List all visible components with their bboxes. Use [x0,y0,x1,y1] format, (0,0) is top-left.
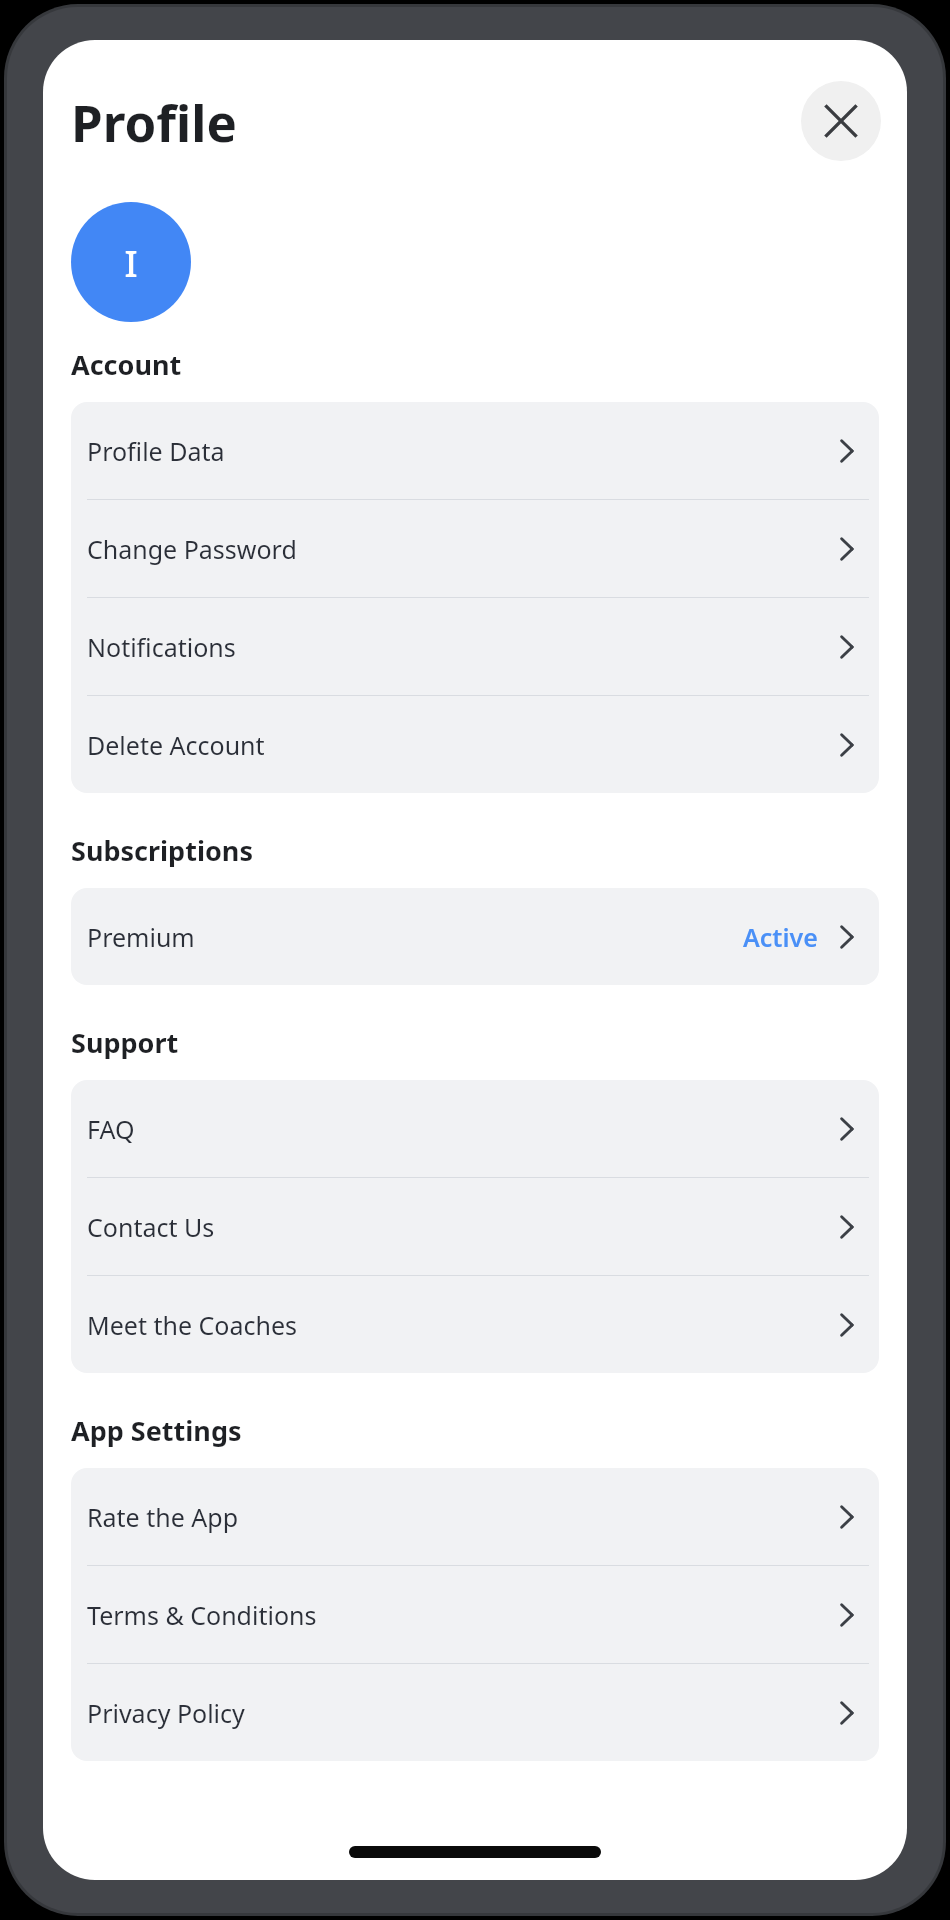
button[interactable]: Close [801,81,881,161]
staticText: App Settings [71,1412,242,1449]
button[interactable]: Profile Data [71,402,879,499]
button[interactable]: I [71,202,191,322]
staticText: Privacy Policy [87,1696,245,1730]
staticText: Active [743,920,818,954]
button[interactable]: FAQ [71,1080,879,1177]
button[interactable]: Meet the Coaches [71,1276,879,1373]
staticText: Premium [87,920,195,954]
staticText: FAQ [87,1112,135,1146]
staticText: Rate the App [87,1500,239,1534]
button[interactable]: Privacy Policy [71,1664,879,1761]
staticText: I [124,237,138,287]
staticText: Profile [71,87,237,156]
staticText: Subscriptions [71,832,253,869]
button[interactable]: Terms & Conditions [71,1566,879,1663]
staticText: Support [71,1024,179,1061]
staticText: Account [71,346,182,383]
button[interactable]: Rate the App [71,1468,879,1565]
staticText: Profile Data [87,434,225,468]
staticText: Notifications [87,630,236,664]
button[interactable]: Delete Account [71,696,879,793]
staticText: Change Password [87,532,297,566]
button[interactable]: Notifications [71,598,879,695]
button[interactable]: Contact Us [71,1178,879,1275]
staticText: Terms & Conditions [87,1598,317,1632]
button[interactable]: Change Password [71,500,879,597]
staticText: Meet the Coaches [87,1308,297,1342]
staticText: Delete Account [87,728,265,762]
staticText: Contact Us [87,1210,215,1244]
button[interactable]: Premium [71,888,879,985]
